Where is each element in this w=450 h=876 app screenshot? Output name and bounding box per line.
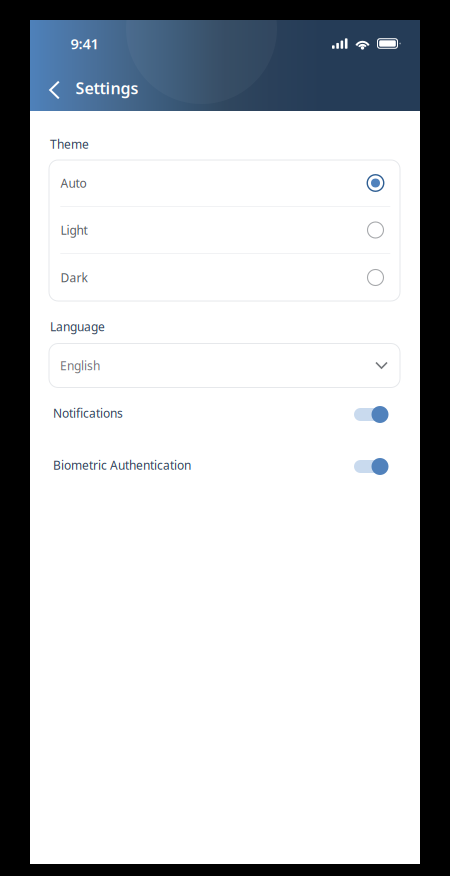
staticText: 9:41 bbox=[70, 34, 98, 53]
button[interactable]: Back bbox=[44, 71, 64, 105]
staticText: Auto bbox=[60, 175, 86, 191]
staticText: Settings bbox=[75, 77, 138, 99]
button[interactable]: English bbox=[49, 343, 400, 387]
staticText: Language bbox=[50, 318, 105, 334]
staticText: Light bbox=[60, 222, 87, 238]
button[interactable]: Biometric Authentication bbox=[49, 454, 403, 476]
staticText: Dark bbox=[60, 269, 87, 285]
button[interactable]: Dark bbox=[49, 254, 400, 301]
staticText: Theme bbox=[50, 136, 89, 152]
staticText: Notifications bbox=[53, 405, 123, 421]
button[interactable]: Light bbox=[49, 207, 400, 254]
staticText: Biometric Authentication bbox=[53, 457, 191, 473]
staticText: English bbox=[60, 357, 100, 373]
button[interactable]: Auto bbox=[49, 160, 400, 207]
button[interactable]: Notifications bbox=[49, 402, 403, 424]
